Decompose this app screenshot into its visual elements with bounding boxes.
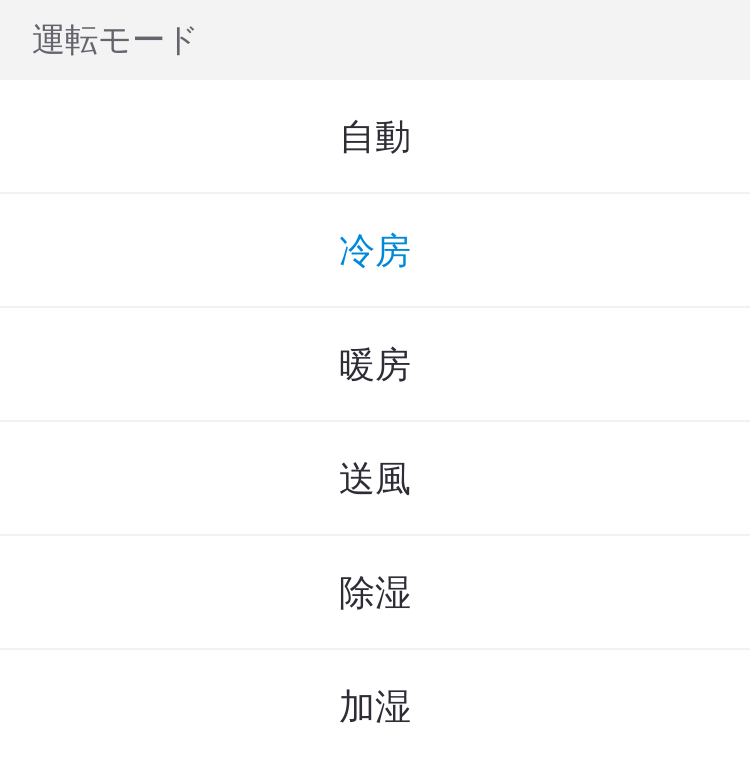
staticText: 運転モード (32, 19, 199, 60)
button[interactable]: 暖房 (0, 308, 750, 420)
staticText: 除湿 (339, 571, 411, 615)
button[interactable]: 自動 (0, 80, 750, 192)
staticText: 自動 (339, 115, 411, 159)
button[interactable]: 送風 (0, 422, 750, 534)
button[interactable]: 加湿 (0, 650, 750, 762)
staticText: 送風 (339, 457, 411, 501)
button[interactable]: 冷房 (0, 194, 750, 306)
staticText: 加湿 (339, 685, 411, 729)
staticText: 冷房 (339, 229, 411, 273)
button[interactable]: 除湿 (0, 536, 750, 648)
staticText: 暖房 (339, 343, 411, 387)
